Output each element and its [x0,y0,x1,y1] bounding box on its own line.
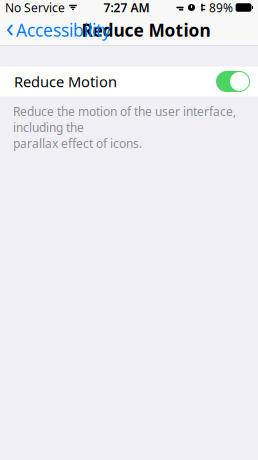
staticText: Reduce Motion [81,18,210,41]
button[interactable]: Reduce Motion [0,66,258,96]
staticText: 89% [209,0,233,15]
staticText: No Service [5,0,65,15]
staticText: 7:27 AM [103,0,149,15]
button[interactable]: Accessibility [0,14,111,45]
staticText: Accessibility [16,18,111,41]
staticText: Reduce the motion of the user interface,… [13,103,236,151]
staticText: Reduce Motion [14,72,117,91]
